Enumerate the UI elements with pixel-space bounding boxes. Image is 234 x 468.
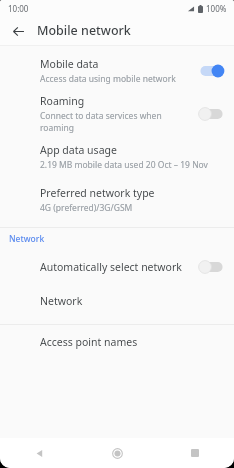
button[interactable]: App data usage bbox=[0, 135, 234, 178]
staticText: App data usage bbox=[40, 143, 117, 157]
button[interactable]: Toggle off bbox=[198, 259, 225, 275]
button[interactable]: Toggle on bbox=[198, 63, 225, 79]
button[interactable]: Roaming bbox=[0, 92, 234, 135]
staticText: 2.19 MB mobile data used 20 Oct – 19 Nov bbox=[40, 159, 208, 171]
button[interactable]: Recent apps bbox=[156, 438, 234, 468]
button[interactable]: Preferred network type bbox=[0, 178, 234, 221]
staticText: Network bbox=[40, 294, 83, 308]
staticText: Mobile network bbox=[37, 22, 131, 39]
button[interactable]: Home bbox=[78, 438, 156, 468]
button[interactable]: Toggle off bbox=[198, 106, 225, 122]
staticText: Mobile data bbox=[40, 57, 99, 71]
staticText: Roaming bbox=[40, 94, 85, 108]
staticText: Automatically select network bbox=[40, 260, 182, 274]
staticText: Network bbox=[9, 233, 45, 245]
staticText: Access data using mobile network bbox=[40, 73, 176, 85]
staticText: 100% bbox=[206, 3, 227, 14]
staticText: Access point names bbox=[40, 335, 138, 349]
button[interactable]: Network bbox=[0, 284, 234, 318]
staticText: Connect to data services when roaming bbox=[40, 110, 192, 134]
staticText: Preferred network type bbox=[40, 186, 155, 200]
button[interactable]: Back bbox=[0, 438, 78, 468]
button[interactable]: Access point names bbox=[0, 325, 234, 359]
staticText: 10:00 bbox=[8, 3, 29, 14]
staticText: 4G (preferred)/3G/GSM bbox=[40, 202, 133, 214]
button[interactable]: Navigate up bbox=[5, 18, 31, 44]
button[interactable]: Automatically select network bbox=[0, 250, 234, 284]
button[interactable]: Mobile data bbox=[0, 49, 234, 92]
